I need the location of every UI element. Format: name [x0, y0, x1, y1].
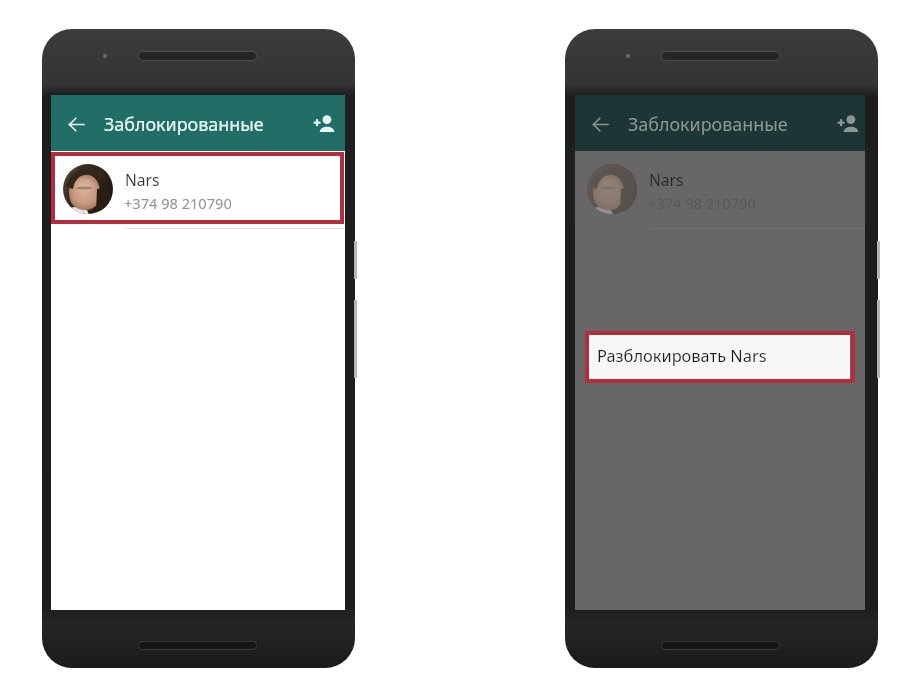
button[interactable]: Add blocked contact — [306, 105, 342, 141]
button[interactable]: Back — [583, 107, 617, 141]
button[interactable]: Back — [59, 107, 93, 141]
button[interactable]: Add blocked contact — [830, 105, 865, 141]
button[interactable]: Разблокировать Nars — [588, 334, 850, 379]
staticText: Nars — [125, 169, 160, 190]
staticText: +374 98 210790 — [648, 193, 756, 213]
button[interactable]: Nars — [575, 151, 865, 229]
staticText: +374 98 210790 — [124, 193, 232, 213]
staticText: Nars — [649, 169, 684, 190]
button[interactable]: Nars — [51, 151, 345, 229]
staticText: Заблокированные — [628, 112, 788, 136]
staticText: Разблокировать Nars — [597, 344, 767, 366]
staticText: Заблокированные — [104, 112, 264, 136]
